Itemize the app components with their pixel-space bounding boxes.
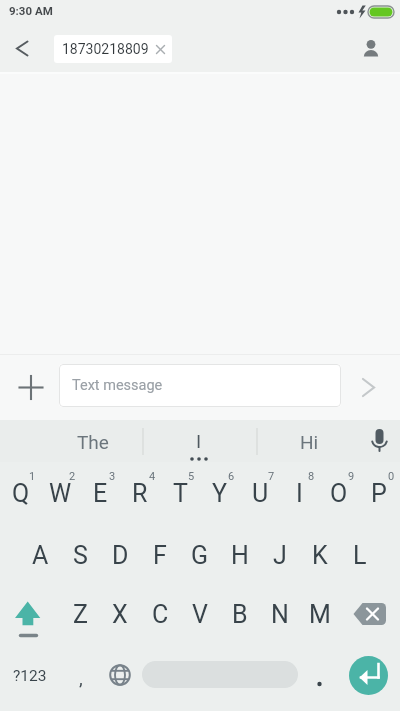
button[interactable]: F xyxy=(140,527,180,583)
staticText: I xyxy=(196,430,202,452)
button[interactable] xyxy=(352,371,386,405)
staticText: N xyxy=(271,600,289,629)
staticText: S xyxy=(73,541,88,570)
button[interactable]: V xyxy=(180,586,220,642)
staticText: 4 xyxy=(149,470,156,483)
staticText: X xyxy=(112,600,128,629)
button[interactable]: N xyxy=(260,586,300,642)
staticText: 2 xyxy=(69,470,76,483)
staticText: M xyxy=(309,600,331,629)
button[interactable]: X xyxy=(100,586,140,642)
button[interactable]: C xyxy=(140,586,180,642)
button[interactable]: L xyxy=(340,527,380,583)
staticText: O xyxy=(330,479,348,508)
staticText: 5 xyxy=(188,470,195,483)
staticText: L xyxy=(353,541,367,570)
button[interactable]: P xyxy=(359,465,399,521)
button[interactable]: S xyxy=(60,527,100,583)
staticText: ?123 xyxy=(13,667,47,685)
button[interactable]: 18730218809 xyxy=(54,35,172,63)
staticText: Text message xyxy=(72,377,163,394)
button[interactable] xyxy=(349,656,388,695)
button[interactable]: R xyxy=(120,465,160,521)
button[interactable]: U xyxy=(240,465,280,521)
button[interactable]: T xyxy=(160,465,200,521)
button[interactable]: J xyxy=(260,527,300,583)
staticText: I xyxy=(296,479,303,508)
staticText: A xyxy=(32,541,49,570)
staticText: Q xyxy=(12,479,30,508)
button[interactable]: E xyxy=(80,465,120,521)
button[interactable]: I xyxy=(154,424,244,458)
staticText: F xyxy=(153,541,167,570)
button[interactable]: Y xyxy=(200,465,240,521)
staticText: C xyxy=(152,600,169,629)
button[interactable]: A xyxy=(20,527,60,583)
staticText: 8 xyxy=(308,470,315,483)
staticText: W xyxy=(49,479,72,508)
button[interactable] xyxy=(142,661,298,688)
button[interactable] xyxy=(104,659,136,691)
button[interactable] xyxy=(348,589,396,637)
staticText: H xyxy=(231,541,249,570)
staticText: J xyxy=(273,541,287,570)
staticText: Y xyxy=(212,479,228,508)
button[interactable]: O xyxy=(319,465,359,521)
button[interactable]: Hi xyxy=(264,425,354,459)
button[interactable]: G xyxy=(180,527,220,583)
button[interactable]: D xyxy=(100,527,140,583)
staticText: 3 xyxy=(109,470,116,483)
staticText: 9:30 AM xyxy=(9,4,53,17)
staticText: The xyxy=(77,431,109,453)
staticText: R xyxy=(132,479,148,508)
button[interactable]: ?123 xyxy=(0,656,60,696)
button[interactable]: , xyxy=(66,658,96,698)
staticText: D xyxy=(112,541,129,570)
button[interactable]: W xyxy=(40,465,80,521)
staticText: 7 xyxy=(268,470,275,483)
button[interactable]: The xyxy=(48,425,138,459)
staticText: B xyxy=(232,600,248,629)
button[interactable]: B xyxy=(220,586,260,642)
staticText: T xyxy=(173,479,188,508)
staticText: Hi xyxy=(300,431,319,453)
button[interactable] xyxy=(14,371,48,405)
staticText: 9 xyxy=(348,470,355,483)
staticText: G xyxy=(191,541,209,570)
staticText: 6 xyxy=(228,470,235,483)
button[interactable]: Z xyxy=(60,586,100,642)
button[interactable] xyxy=(304,660,335,691)
staticText: 18730218809 xyxy=(62,41,149,57)
button[interactable]: I xyxy=(279,465,319,521)
button[interactable]: Q xyxy=(1,465,41,521)
staticText: E xyxy=(93,479,108,508)
staticText: 1 xyxy=(29,470,36,483)
button[interactable] xyxy=(355,31,387,63)
button[interactable]: M xyxy=(300,586,340,642)
staticText: V xyxy=(192,600,208,629)
button[interactable]: Text message xyxy=(59,364,341,407)
staticText: U xyxy=(252,479,269,508)
staticText: Z xyxy=(73,600,88,629)
staticText: 0 xyxy=(388,470,395,483)
button[interactable] xyxy=(4,588,52,640)
staticText: K xyxy=(312,541,328,570)
button[interactable]: K xyxy=(300,527,340,583)
staticText: , xyxy=(79,667,83,689)
staticText: P xyxy=(371,479,387,508)
button[interactable] xyxy=(6,32,38,64)
button[interactable]: H xyxy=(220,527,260,583)
